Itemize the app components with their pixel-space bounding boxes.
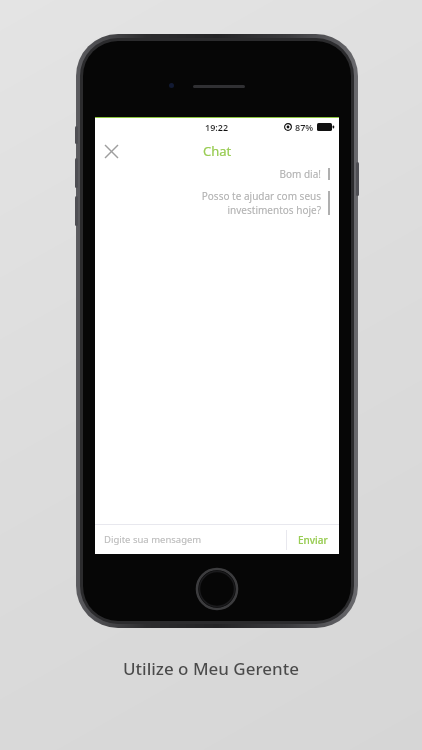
staticText: Chat [203,142,232,160]
staticText: 87% [295,121,314,133]
button[interactable]: Digite sua mensagem [95,525,286,554]
staticText: Digite sua mensagem [104,533,202,546]
staticText: Bom dia! [279,167,321,181]
button[interactable]: Enviar [287,525,339,554]
staticText: Posso te ajudar com seus [201,189,321,203]
staticText: 19:22 [205,121,229,133]
staticText: Enviar [298,533,328,547]
staticText: Utilize o Meu Gerente [0,657,422,680]
staticText: investimentos hoje? [227,203,321,217]
button[interactable]: Close [95,135,127,167]
